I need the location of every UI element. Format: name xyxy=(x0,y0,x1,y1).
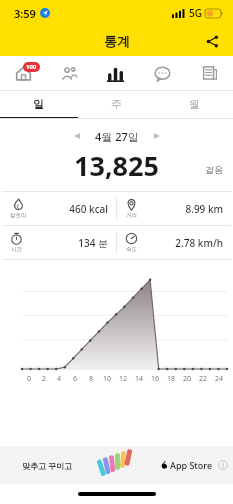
staticText: 24 xyxy=(215,374,224,384)
staticText: 16 xyxy=(151,374,160,384)
staticText: 20 xyxy=(183,374,192,384)
staticText: 0 xyxy=(27,374,32,384)
button[interactable]: 다음 날짜 xyxy=(147,126,167,146)
button[interactable]: 거리 xyxy=(117,192,231,225)
staticText: 2.78 km/h xyxy=(138,236,223,250)
staticText: 10 xyxy=(103,374,112,384)
staticText: 시간 xyxy=(11,246,22,253)
staticText: 4월 27일 xyxy=(95,129,139,144)
staticText: 460 kcal xyxy=(27,202,108,216)
button[interactable]: 탭 xyxy=(139,56,186,90)
staticText: 맞추고 꾸미고 xyxy=(22,460,73,471)
button[interactable]: 탭 xyxy=(46,56,92,90)
staticText: 14 xyxy=(135,374,144,384)
button[interactable]: 광고 정보 xyxy=(218,460,228,470)
staticText: 2 xyxy=(42,374,47,384)
staticText: 월 xyxy=(189,97,200,111)
staticText: 13,825 xyxy=(74,147,159,181)
staticText: 주 xyxy=(111,97,122,111)
staticText: 칼로리 xyxy=(10,212,27,219)
button[interactable]: 속도 xyxy=(117,226,231,259)
staticText: 22 xyxy=(199,374,208,384)
staticText: 5G xyxy=(189,6,202,20)
staticText: 3:59 xyxy=(14,6,36,21)
staticText: 거리 xyxy=(126,212,137,219)
staticText: 8 xyxy=(89,374,94,384)
staticText: 속도 xyxy=(126,246,137,253)
button[interactable]: 칼로리 xyxy=(2,192,116,225)
button[interactable]: 월 xyxy=(155,91,233,117)
staticText: 통계 xyxy=(104,33,130,49)
staticText: 12 xyxy=(119,374,128,384)
staticText: 18 xyxy=(167,374,176,384)
staticText: 8.99 km xyxy=(138,202,223,216)
button[interactable]: 탭 xyxy=(92,56,139,90)
staticText: 4 xyxy=(57,374,62,384)
button[interactable]: 시간 xyxy=(2,226,116,259)
button[interactable]: 이전 날짜 xyxy=(67,126,87,146)
button[interactable]: 주 xyxy=(77,91,155,117)
button[interactable]: 일 xyxy=(0,91,77,117)
staticText: 걸음 xyxy=(205,164,223,175)
staticText: App Store xyxy=(170,459,213,471)
staticText: 100 xyxy=(26,63,37,71)
button[interactable]: 탭 xyxy=(0,56,46,90)
button[interactable]: 공유 xyxy=(199,28,225,54)
button[interactable]: 맞추고 꾸미고 xyxy=(0,446,233,484)
staticText: 134 분 xyxy=(23,236,108,250)
button[interactable]: 탭 xyxy=(186,56,233,90)
staticText: 일 xyxy=(33,97,44,111)
staticText: 6 xyxy=(73,374,78,384)
